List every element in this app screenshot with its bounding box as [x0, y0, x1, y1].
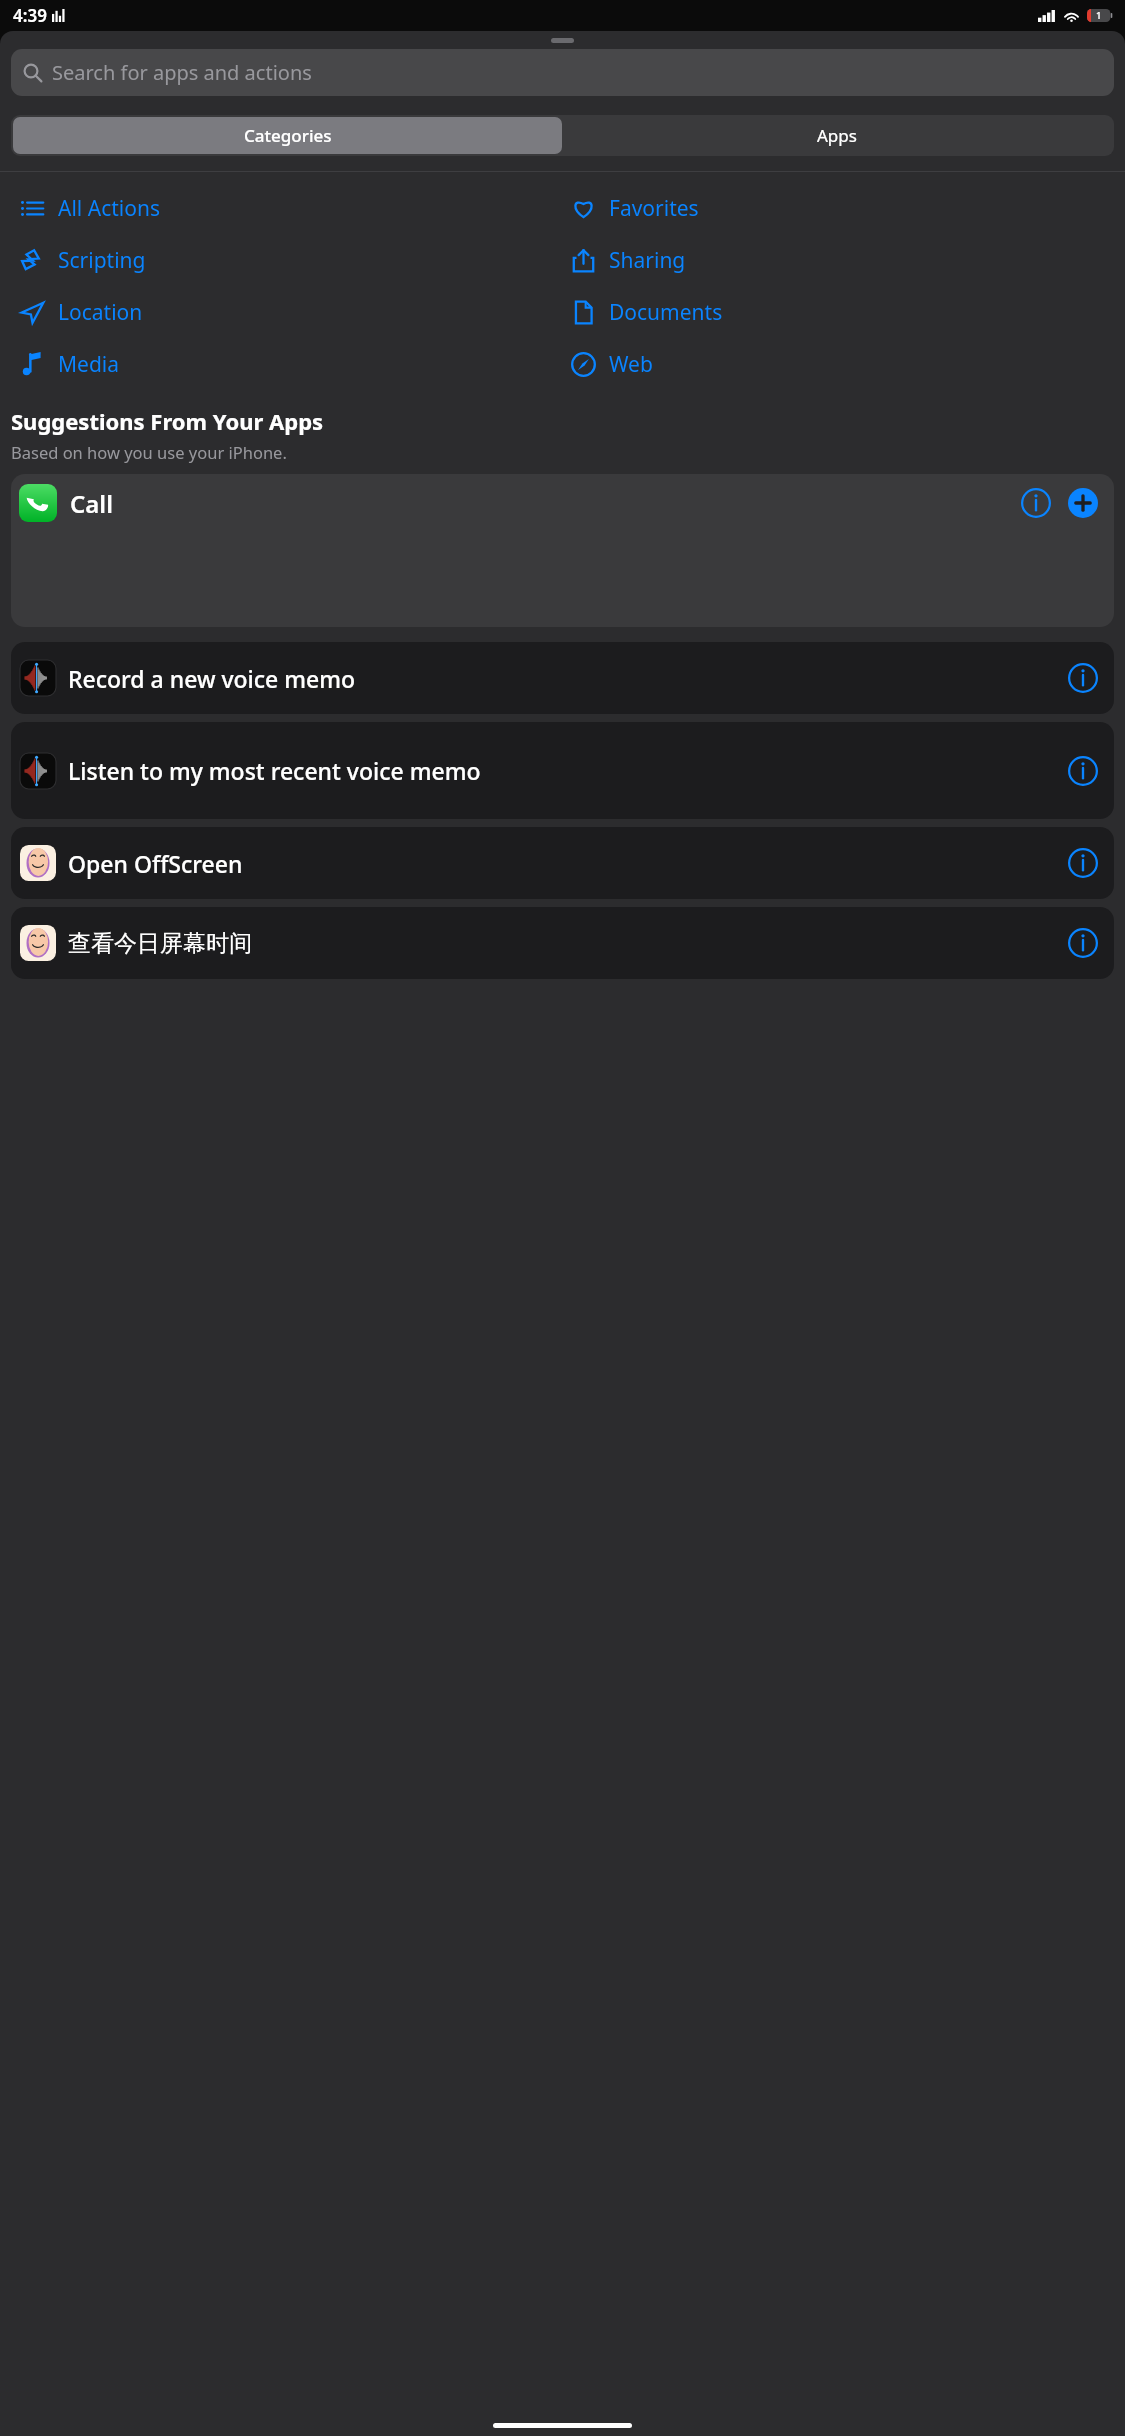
button[interactable]: Info — [1064, 924, 1102, 962]
button[interactable]: Listen to my most recent voice memo — [11, 722, 1114, 819]
staticText: Suggestions From Your Apps — [11, 406, 324, 436]
button[interactable]: 查看今日屏幕时间 — [11, 907, 1114, 979]
button[interactable]: Scripting — [11, 240, 562, 280]
staticText: 查看今日屏幕时间 — [68, 929, 1056, 958]
staticText: Location — [58, 298, 143, 327]
button[interactable]: Info — [1064, 752, 1102, 790]
staticText: All Actions — [58, 194, 160, 223]
button[interactable]: Record a new voice memo — [11, 642, 1114, 714]
staticText: Categories — [244, 124, 332, 147]
staticText: Favorites — [609, 194, 699, 223]
button[interactable]: All Actions — [11, 188, 562, 228]
button[interactable]: Web — [562, 344, 1114, 384]
button[interactable]: Sharing — [562, 240, 1114, 280]
button[interactable]: Add — [1064, 484, 1102, 522]
button[interactable]: Info — [1017, 484, 1055, 522]
staticText: Based on how you use your iPhone. — [11, 441, 287, 463]
staticText: Sharing — [609, 246, 686, 275]
staticText: Scripting — [58, 246, 146, 275]
button[interactable]: Documents — [562, 292, 1114, 332]
staticText: Open OffScreen — [68, 848, 1056, 879]
button[interactable]: Location — [11, 292, 562, 332]
staticText: Record a new voice memo — [68, 663, 1056, 694]
staticText: Listen to my most recent voice memo — [68, 755, 1056, 786]
button[interactable]: Search for apps and actions — [11, 49, 1114, 96]
staticText: Documents — [609, 298, 723, 327]
staticText: Call — [70, 487, 113, 520]
staticText: Search for apps and actions — [52, 59, 312, 86]
button[interactable]: Apps — [562, 117, 1112, 154]
staticText: 4:39 — [13, 4, 47, 27]
staticText: Web — [609, 350, 653, 379]
button[interactable]: Categories — [13, 117, 562, 154]
button[interactable]: Media — [11, 344, 562, 384]
button[interactable]: Open OffScreen — [11, 827, 1114, 899]
staticText: 1 — [1096, 9, 1102, 22]
button[interactable]: Call — [11, 474, 1114, 627]
staticText: Apps — [817, 124, 857, 147]
button[interactable]: Info — [1064, 659, 1102, 697]
button[interactable]: Favorites — [562, 188, 1114, 228]
staticText: Media — [58, 350, 120, 379]
button[interactable]: Info — [1064, 844, 1102, 882]
